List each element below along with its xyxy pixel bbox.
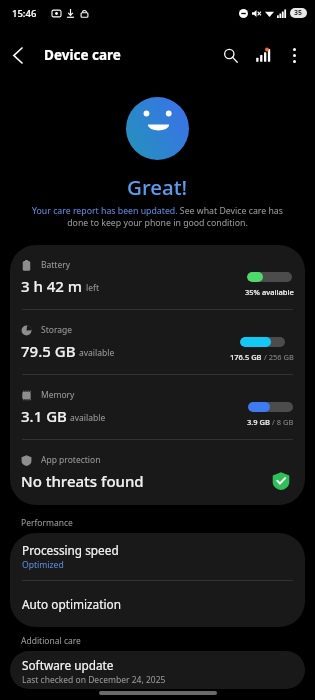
button[interactable]: Auto optimization (10, 581, 305, 627)
button[interactable]: Search (214, 39, 246, 71)
button[interactable]: Diagnostics (246, 39, 278, 71)
staticText: / 256 GB (262, 352, 294, 362)
staticText: Processing speed (22, 542, 119, 558)
staticText: / 8 GB (270, 417, 294, 427)
staticText: Your care report has been updated. See w… (28, 205, 287, 229)
staticText: No threats found (21, 471, 144, 491)
staticText: Software update (22, 657, 114, 673)
staticText: Performance (21, 517, 73, 529)
button[interactable]: Processing speed (10, 533, 305, 580)
staticText: 3.1 GB (21, 406, 67, 426)
staticText: Auto optimization (22, 596, 121, 612)
staticText: App protection (41, 454, 101, 466)
button[interactable]: Battery (10, 245, 305, 309)
staticText: Storage (41, 324, 73, 336)
staticText: available (70, 412, 106, 424)
staticText: 35% available (245, 287, 294, 297)
staticText: left (86, 282, 99, 294)
button[interactable]: Back (0, 38, 34, 72)
staticText: Additional care (21, 635, 81, 647)
staticText: Memory (41, 389, 75, 401)
staticText: 35 (294, 8, 303, 18)
staticText: Battery (41, 259, 71, 271)
button[interactable]: Storage (10, 310, 305, 374)
staticText: 176.5 GB (230, 352, 262, 362)
staticText: Great! (127, 173, 188, 201)
staticText: 3 h 42 m (21, 276, 83, 296)
staticText: Optimized (22, 559, 64, 571)
staticText: 15:46 (12, 7, 37, 20)
button[interactable]: Software update (10, 651, 305, 686)
staticText: Device care (44, 46, 121, 64)
staticText: available (79, 347, 115, 359)
staticText: 79.5 GB (21, 341, 76, 361)
staticText: 3.9 GB (247, 417, 270, 427)
button[interactable]: More options (278, 39, 310, 71)
button[interactable]: Memory (10, 375, 305, 439)
button[interactable]: App protection (10, 440, 305, 504)
staticText: Last checked on December 24, 2025 (22, 674, 166, 686)
